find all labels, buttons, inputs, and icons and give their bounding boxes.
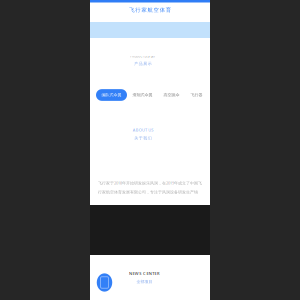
staticText: 编队式伞翼 (101, 92, 121, 97)
staticText: 关于我们 (134, 136, 152, 141)
button[interactable]: 飞行器 (185, 89, 208, 100)
button[interactable]: 高空跳伞 (158, 89, 185, 100)
staticText: 全部项目 (136, 279, 152, 284)
button[interactable]: News (94, 272, 114, 292)
staticText: PRODUCT DISPLAY (130, 55, 156, 58)
button[interactable]: 滑翔式伞翼 (127, 89, 158, 100)
staticText: 产品展示 (134, 61, 152, 66)
staticText: 滑翔式伞翼 (132, 92, 152, 97)
staticText: 飞行器 (190, 92, 202, 97)
staticText: 高空跳伞 (163, 92, 179, 97)
staticText: NEWS CENTER (129, 271, 160, 276)
button[interactable]: 飞行家航空体育 (90, 2, 210, 18)
staticText: 飞行家航空体育 (129, 7, 171, 13)
staticText: ABOUT US (133, 127, 153, 133)
button[interactable]: 编队式伞翼 (96, 89, 127, 101)
staticText: 飞行家于2018年开始研发娱乐风洞，在2019年成立了中国飞行家航空体育发展有限… (98, 180, 202, 195)
